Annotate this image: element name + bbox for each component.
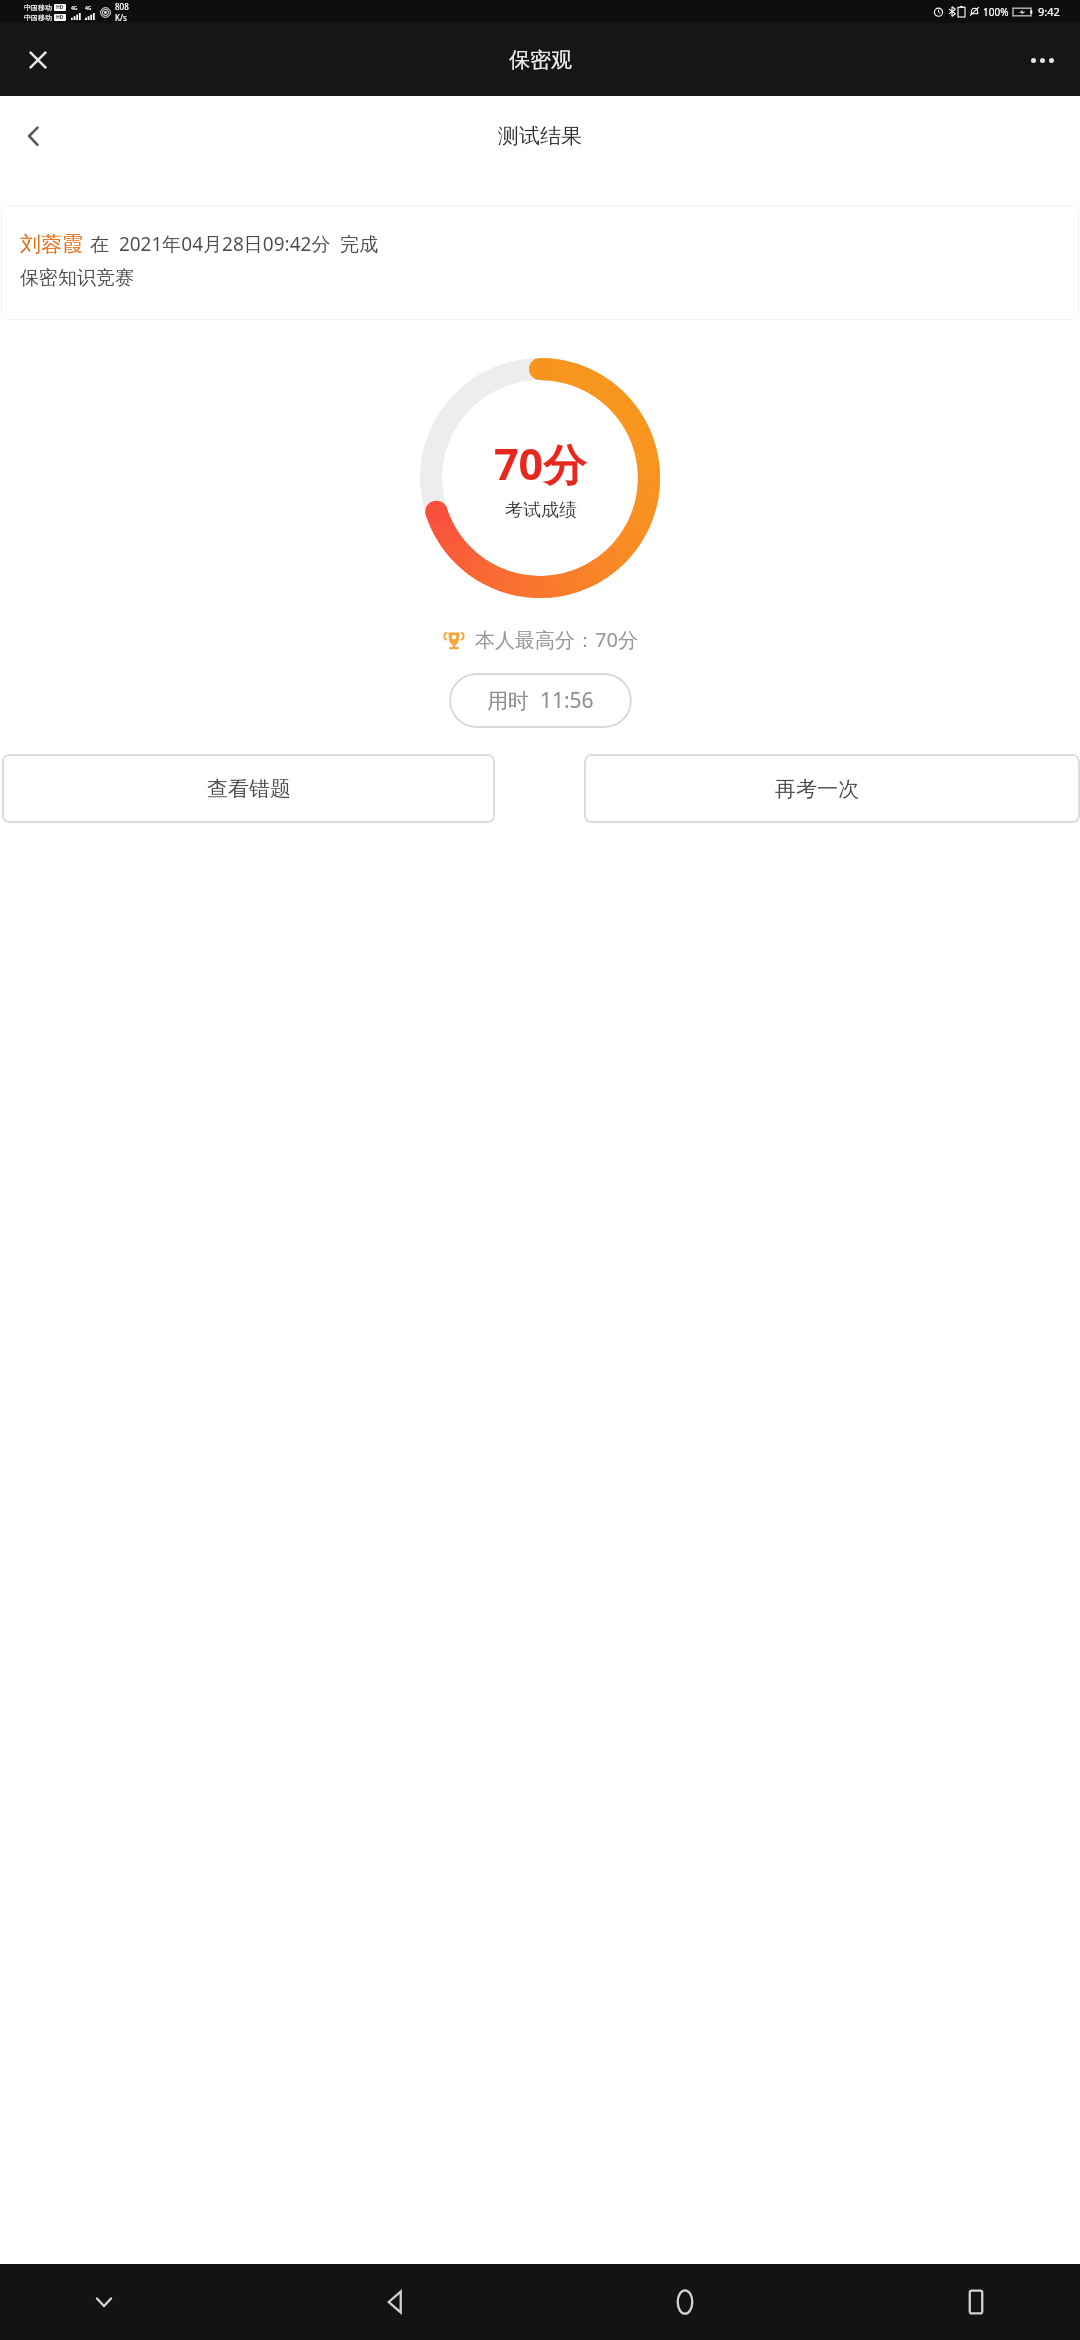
button[interactable]: Hide keyboard	[76, 2274, 132, 2330]
staticText: 在 2021年04月28日09:42分 完成	[90, 231, 379, 257]
staticText: HD	[56, 14, 64, 21]
button[interactable]: Home	[657, 2274, 713, 2330]
button[interactable]: 再考一次	[584, 754, 1080, 823]
staticText: 本人最高分：70分	[475, 626, 638, 653]
button[interactable]: Recent apps	[948, 2274, 1004, 2330]
staticText: K/s	[115, 12, 127, 23]
staticText: 中国移动	[24, 13, 52, 22]
staticText: 保密知识竞赛	[20, 266, 134, 290]
staticText: 中国移动	[24, 3, 52, 12]
button[interactable]: Back	[8, 110, 60, 162]
staticText: 测试结果	[498, 123, 582, 149]
button[interactable]: 查看错题	[2, 754, 495, 823]
button[interactable]: Back	[367, 2274, 423, 2330]
staticText: 再考一次	[775, 776, 859, 802]
staticText: 70分	[494, 434, 587, 493]
staticText: 9:42	[1038, 4, 1060, 19]
staticText: 808	[115, 1, 129, 12]
staticText: 查看错题	[207, 776, 291, 802]
staticText: 4G	[85, 5, 92, 12]
staticText: HD	[56, 4, 64, 11]
staticText: 刘蓉霞	[20, 231, 83, 257]
button[interactable]: More options	[1018, 36, 1066, 84]
button[interactable]: 用时 11:56	[449, 673, 632, 728]
staticText: 保密观	[509, 47, 572, 73]
staticText: 用时 11:56	[487, 686, 594, 715]
button[interactable]: Close	[14, 36, 62, 84]
staticText: 4G	[71, 5, 78, 12]
staticText: 100%	[983, 5, 1009, 19]
staticText: 考试成绩	[505, 499, 577, 522]
